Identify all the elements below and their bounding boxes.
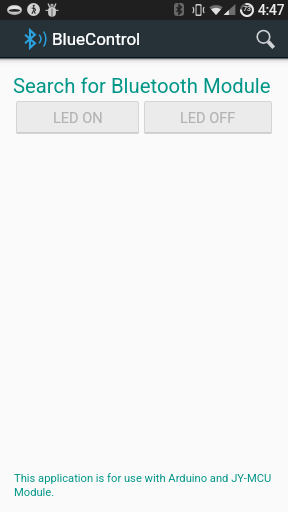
button[interactable]: Search xyxy=(247,21,285,58)
staticText: Search for Bluetooth Module xyxy=(13,74,271,98)
button[interactable]: LED ON xyxy=(16,101,139,134)
button[interactable]: LED OFF xyxy=(144,101,272,134)
staticText: This application is for use with Arduino… xyxy=(14,472,276,498)
staticText: BlueControl xyxy=(52,29,141,49)
staticText: LED OFF xyxy=(180,110,236,127)
staticText: 4:47 xyxy=(258,2,285,18)
staticText: LED ON xyxy=(53,110,103,127)
staticText: 73 xyxy=(242,5,252,13)
